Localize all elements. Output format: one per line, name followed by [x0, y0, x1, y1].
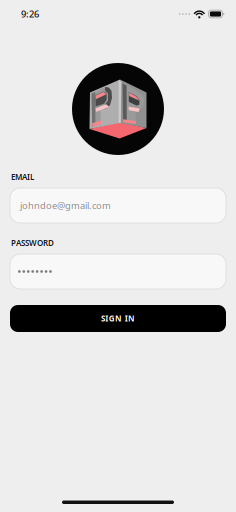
staticText: johndoe@gmail.com — [20, 199, 111, 212]
staticText: SIGN IN — [101, 313, 135, 324]
staticText: EMAIL — [11, 172, 34, 182]
button[interactable]: SIGN IN — [10, 305, 226, 332]
button[interactable] — [10, 254, 226, 289]
button[interactable]: johndoe@gmail.com — [10, 188, 226, 223]
staticText: PASSWORD — [11, 238, 54, 248]
staticText: 9:26 — [21, 8, 39, 20]
